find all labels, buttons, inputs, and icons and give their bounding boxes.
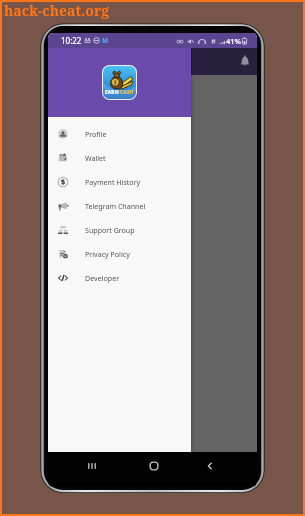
button[interactable]: Developer [48,266,191,290]
staticText: Privacy Policy [85,249,130,259]
staticText: 10:22 [61,35,82,46]
staticText: Support Group [85,225,135,235]
staticText: Profile [85,129,107,139]
button[interactable]: Profile [48,122,191,146]
button[interactable]: Privacy Policy [48,242,191,266]
button[interactable]: Telegram Channel [48,194,191,218]
staticText: hack-cheat.org [4,1,110,20]
button[interactable]: Home [146,458,162,474]
staticText: Wallet [85,153,106,163]
button[interactable]: Support Group [48,218,191,242]
staticText: 41% [226,36,241,46]
button[interactable]: Payment History [48,170,191,194]
staticText: M [102,36,109,45]
button[interactable]: Recent apps [84,458,100,474]
staticText: Telegram Channel [85,201,146,211]
button[interactable]: Wallet [48,146,191,170]
staticText: EARN CASH [105,89,134,96]
staticText: Developer [85,273,120,283]
staticText: Payment History [85,177,141,187]
button[interactable]: Back [202,458,218,474]
button[interactable]: Notifications [238,54,252,69]
